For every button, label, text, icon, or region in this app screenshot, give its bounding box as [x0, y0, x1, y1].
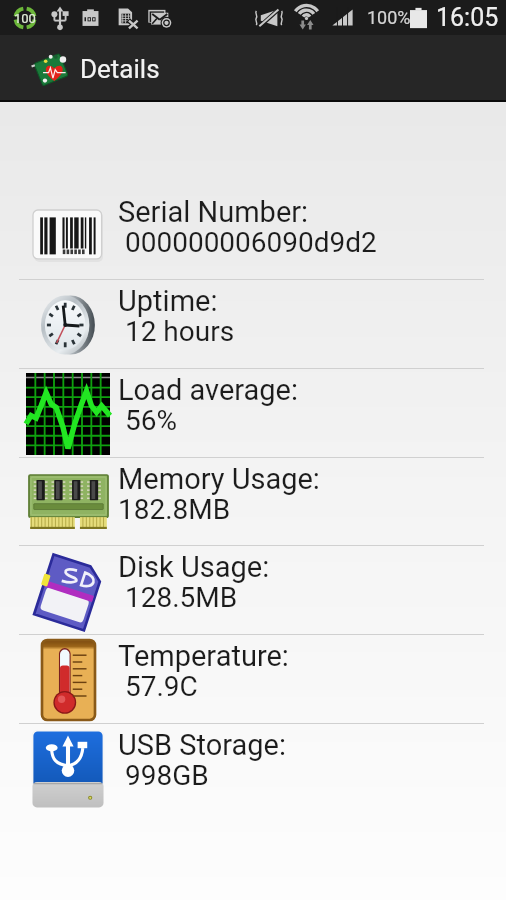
staticText: 12 hours: [118, 315, 235, 348]
button[interactable]: Load average:: [0, 369, 506, 458]
staticText: 57.9C: [118, 670, 198, 703]
staticText: Details: [80, 54, 160, 84]
staticText: Memory Usage:: [118, 462, 320, 496]
staticText: Serial Number:: [118, 195, 309, 229]
button[interactable]: USB Storage:: [0, 724, 506, 813]
button[interactable]: Memory Usage:: [0, 458, 506, 546]
staticText: Disk Usage:: [118, 550, 270, 584]
staticText: 000000006090d9d2: [118, 226, 377, 259]
button[interactable]: Disk Usage:: [0, 546, 506, 635]
staticText: 16:05: [436, 3, 499, 32]
staticText: 128.5MB: [118, 581, 238, 614]
staticText: 100: [14, 11, 36, 26]
staticText: USB Storage:: [118, 728, 286, 762]
button[interactable]: Serial Number:: [0, 191, 506, 280]
staticText: Temperature:: [118, 639, 289, 673]
staticText: 182.8MB: [118, 493, 231, 526]
staticText: 998GB: [118, 759, 209, 792]
button[interactable]: Uptime:: [0, 280, 506, 369]
staticText: 100%: [367, 7, 411, 28]
button[interactable]: Temperature:: [0, 635, 506, 724]
staticText: Uptime:: [118, 284, 218, 318]
staticText: Load average:: [118, 373, 299, 407]
staticText: 56%: [118, 404, 177, 437]
button[interactable]: Details: [0, 35, 506, 102]
